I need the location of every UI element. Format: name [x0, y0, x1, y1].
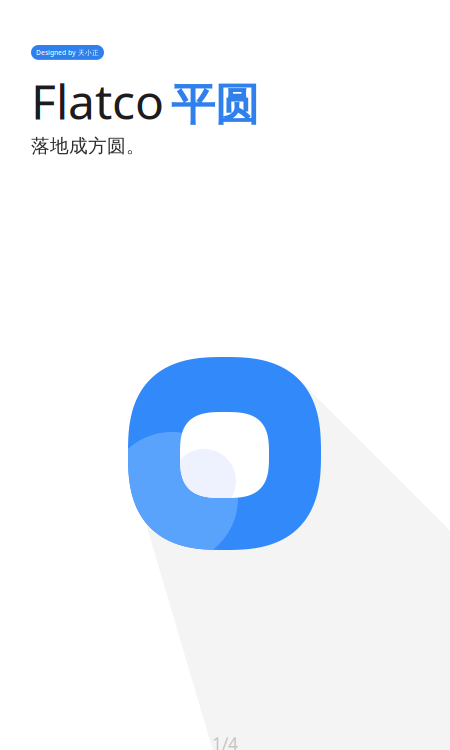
staticText: 1/4 [212, 732, 238, 750]
staticText: 落地成方圆。 [31, 135, 145, 157]
staticText: Designed by 天小正 [36, 48, 99, 57]
staticText: Flatco [31, 69, 164, 133]
staticText: 平圆 [171, 78, 259, 132]
